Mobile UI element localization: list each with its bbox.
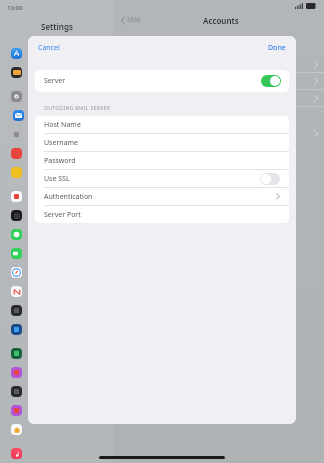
button[interactable] <box>0 225 113 244</box>
button[interactable]: Mail <box>121 15 141 25</box>
button[interactable] <box>0 244 113 263</box>
staticText: Cancel <box>38 43 60 53</box>
staticText: Mail <box>127 15 141 25</box>
staticText: Authentication <box>44 192 93 202</box>
button[interactable]: Host Name <box>35 116 289 133</box>
staticText: Settings <box>41 21 73 32</box>
button[interactable]: Cancel <box>36 41 62 55</box>
button[interactable] <box>0 63 113 82</box>
button[interactable]: Done <box>266 41 288 55</box>
button[interactable] <box>0 87 113 106</box>
button[interactable] <box>0 301 113 320</box>
staticText: OUTGOING MAIL SERVER <box>44 105 111 112</box>
staticText: Server <box>44 76 66 86</box>
button[interactable]: Server Port <box>35 206 289 223</box>
button[interactable]: Server <box>35 70 289 92</box>
staticText: Use SSL <box>44 174 70 184</box>
button[interactable] <box>0 263 113 282</box>
button[interactable]: Authentication <box>35 188 289 205</box>
button[interactable] <box>0 282 113 301</box>
button[interactable] <box>0 420 113 439</box>
staticText: Password <box>44 156 76 166</box>
button[interactable]: Use SSL <box>35 170 289 187</box>
button[interactable] <box>0 44 113 63</box>
button[interactable] <box>0 401 113 420</box>
button[interactable] <box>0 363 113 382</box>
button[interactable] <box>0 382 113 401</box>
button[interactable]: Toggle off <box>260 173 280 185</box>
staticText: Accounts <box>203 15 239 26</box>
button[interactable] <box>0 320 113 339</box>
button[interactable] <box>3 106 110 125</box>
staticText: Done <box>268 43 286 53</box>
button[interactable]: Username <box>35 134 289 151</box>
button[interactable] <box>0 163 113 182</box>
staticText: 10:00 <box>7 4 23 12</box>
button[interactable] <box>0 187 113 206</box>
button[interactable] <box>0 444 113 463</box>
button[interactable] <box>0 125 113 144</box>
staticText: Host Name <box>44 120 81 130</box>
button[interactable] <box>0 344 113 363</box>
button[interactable]: Password <box>35 152 289 169</box>
button[interactable] <box>0 144 113 163</box>
staticText: Username <box>44 138 79 148</box>
staticText: Server Port <box>44 210 81 220</box>
button[interactable] <box>0 206 113 225</box>
button[interactable]: Toggle on <box>261 75 281 87</box>
